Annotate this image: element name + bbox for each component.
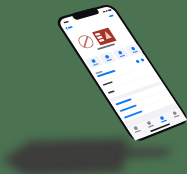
button[interactable]: Phone mockup [0, 0, 187, 174]
